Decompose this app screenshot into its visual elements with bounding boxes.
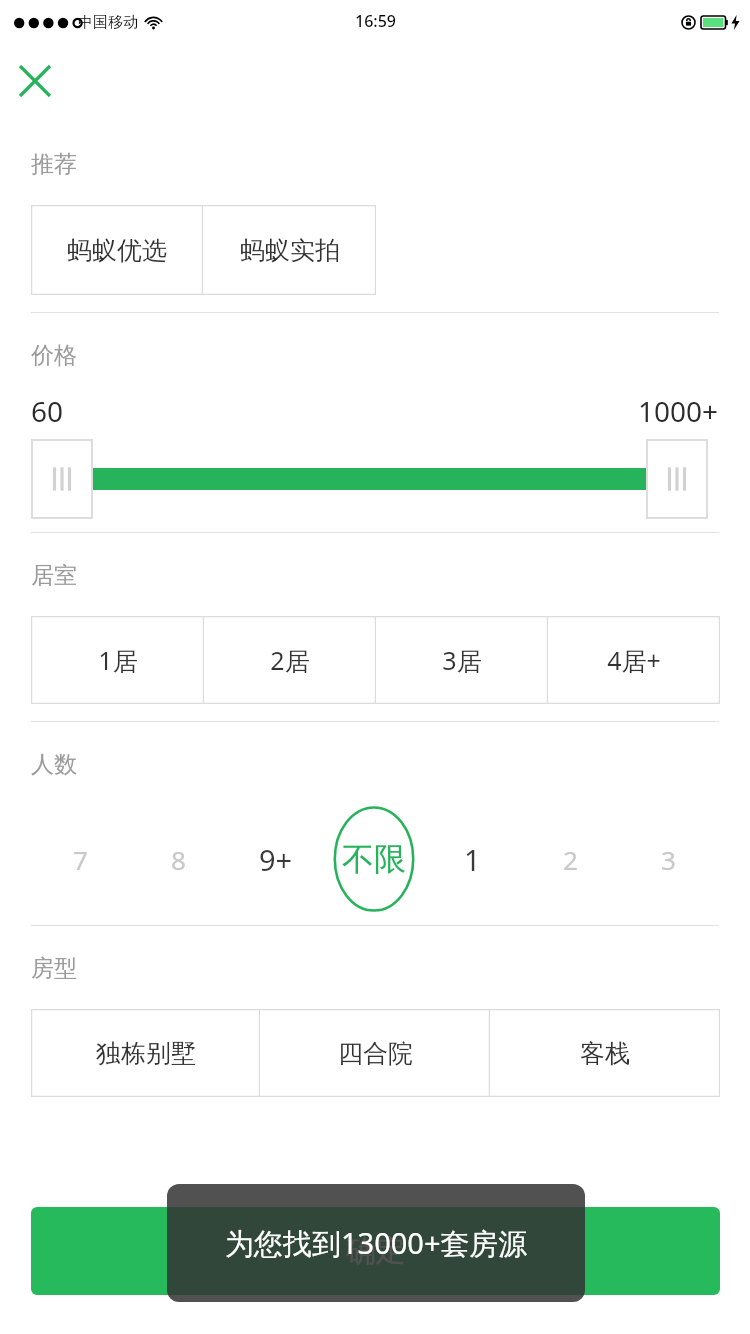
button[interactable]: 7	[31, 799, 129, 919]
staticText: 价格	[31, 341, 77, 370]
staticText: 1000+	[638, 392, 719, 430]
button[interactable]: 8	[129, 799, 227, 919]
staticText: 4居+	[607, 643, 661, 677]
staticText: 3居	[442, 643, 482, 677]
staticText: 7	[73, 842, 88, 877]
staticText: 蚂蚁优选	[67, 235, 167, 266]
staticText: 居室	[31, 561, 77, 590]
button[interactable]: 3居	[376, 616, 548, 704]
button[interactable]: 蚂蚁优选	[31, 205, 203, 295]
staticText: 2	[563, 842, 578, 877]
staticText: 为您找到13000+套房源	[225, 1223, 528, 1263]
button[interactable]: Price handle	[647, 440, 707, 518]
button[interactable]: Price handle	[32, 440, 92, 518]
staticText: 独栋别墅	[96, 1038, 196, 1069]
button[interactable]: 9+	[227, 799, 325, 919]
button[interactable]: 2居	[204, 616, 376, 704]
button[interactable]: 确定	[31, 1207, 720, 1295]
staticText: 中国移动	[78, 13, 138, 32]
staticText: 四合院	[338, 1038, 413, 1069]
staticText: 1居	[98, 643, 138, 677]
button[interactable]: 1	[423, 799, 521, 919]
staticText: 16:59	[355, 10, 396, 32]
button[interactable]: 4居+	[548, 616, 720, 704]
staticText: 蚂蚁实拍	[240, 235, 340, 266]
staticText: 1	[464, 840, 481, 879]
button[interactable]: Close	[12, 58, 58, 104]
staticText: 推荐	[31, 150, 77, 179]
button[interactable]: 1居	[31, 616, 204, 704]
staticText: 确定	[346, 1232, 406, 1270]
staticText: 2居	[270, 643, 310, 677]
button[interactable]: 蚂蚁实拍	[203, 205, 376, 295]
staticText: 3	[661, 842, 676, 877]
staticText: 60	[31, 392, 64, 430]
staticText: 9+	[259, 840, 293, 879]
staticText: 房型	[31, 954, 77, 983]
button[interactable]: 独栋别墅	[31, 1009, 260, 1097]
staticText: 不限	[342, 839, 406, 879]
staticText: 8	[171, 842, 186, 877]
button[interactable]: 2	[521, 799, 619, 919]
button[interactable]: 四合院	[260, 1009, 490, 1097]
button[interactable]: 不限	[325, 799, 423, 919]
button[interactable]: 客栈	[490, 1009, 720, 1097]
button[interactable]: 3	[619, 799, 717, 919]
staticText: 客栈	[580, 1038, 630, 1069]
staticText: 人数	[31, 750, 77, 779]
